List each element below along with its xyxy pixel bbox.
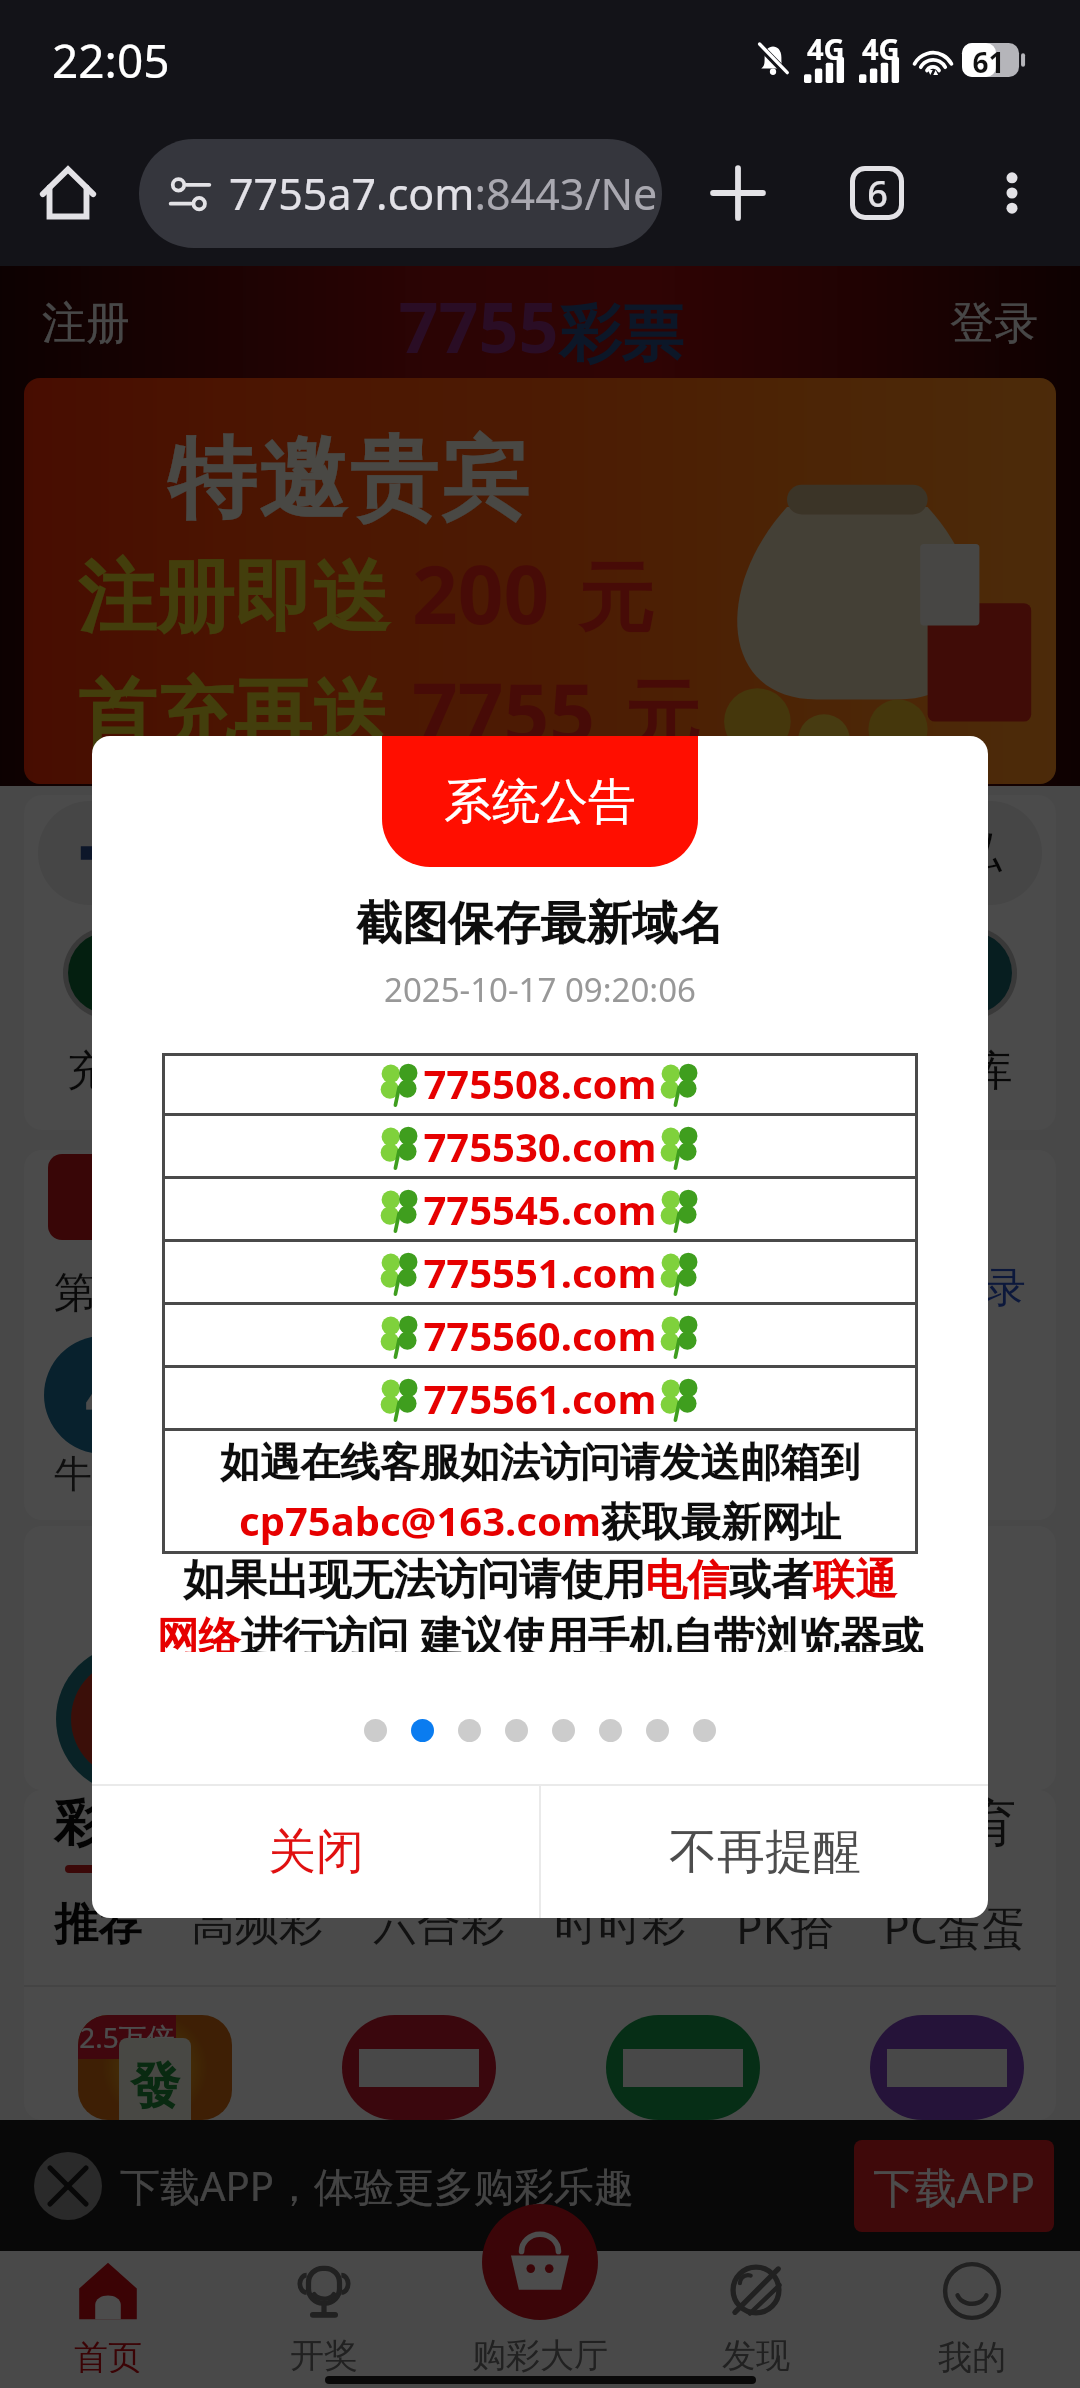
button[interactable]: New tab <box>692 147 784 239</box>
button[interactable]: Home <box>22 147 114 239</box>
staticText: 开奖 <box>290 2334 358 2373</box>
button[interactable]: 我的 <box>864 2251 1080 2373</box>
staticText: 7755 <box>398 278 559 373</box>
staticText: 图库 <box>929 1045 1013 1098</box>
staticText: cp75abc@163.com获取最新网址 <box>162 1493 918 1548</box>
button[interactable]: 775551.com <box>162 1242 918 1302</box>
button[interactable]: 购彩大厅 <box>432 2251 648 2373</box>
staticText: 开奖记录 <box>858 1262 1026 1315</box>
staticText: 彩票 <box>54 1792 154 1855</box>
staticText: 7755a7.com:8443/Ne <box>229 164 658 223</box>
staticText: 不再提醒 <box>669 1822 861 1882</box>
staticText: PC蛋蛋 <box>883 1897 1026 1957</box>
staticText: 购彩大厅 <box>472 2334 608 2373</box>
staticText: 7 <box>223 1353 259 1437</box>
staticText: 4 <box>85 1353 121 1437</box>
staticText: 时时彩 <box>554 1897 686 1952</box>
button[interactable]: 图库 <box>916 927 1026 1098</box>
staticText: 775551.com <box>423 1245 657 1299</box>
staticText: 775545.com <box>423 1182 657 1236</box>
staticText: 4G+ <box>862 29 902 68</box>
button[interactable]: 充值 <box>54 927 164 1098</box>
button[interactable]: 活动 <box>629 927 739 1098</box>
button[interactable] <box>606 2015 760 2120</box>
staticText: 0 <box>775 1353 811 1437</box>
button[interactable]: 2.5万倍 <box>78 2015 232 2120</box>
button[interactable]: Tabs, 6 open <box>831 147 923 239</box>
staticText: 5 <box>485 1677 521 1761</box>
button[interactable]: 775561.com <box>162 1368 918 1428</box>
button[interactable]: 公告 <box>38 801 274 905</box>
staticText: 彩票 <box>559 295 683 373</box>
button[interactable]: Dismiss download banner <box>34 2152 102 2220</box>
button[interactable]: 客服 <box>550 801 786 905</box>
staticText: 活动 <box>642 1045 726 1098</box>
staticText: 元 <box>624 669 700 765</box>
staticText: 下载APP <box>873 2158 1035 2215</box>
staticText: PK拾 <box>736 1897 834 1957</box>
button[interactable]: 775545.com <box>162 1179 918 1239</box>
staticText: 6 <box>867 169 888 218</box>
staticText: 代理 <box>402 826 490 881</box>
staticText: 9 <box>499 1353 535 1437</box>
staticText: 775561.com <box>423 1371 657 1425</box>
button[interactable]: 775530.com <box>162 1116 918 1176</box>
staticText: 1 <box>361 1353 397 1437</box>
button[interactable]: 提现 <box>341 927 451 1098</box>
staticText: 特邀贵宾 <box>166 424 530 535</box>
staticText: 3 <box>637 1353 673 1437</box>
staticText: 注册即送 <box>78 549 390 647</box>
staticText: 200 <box>412 538 550 647</box>
staticText: 充值 <box>67 1045 151 1098</box>
staticText: 高频彩 <box>191 1897 323 1952</box>
staticText: 牛牛 幸运 和值 <box>54 1446 322 1498</box>
staticText: 7755 <box>412 656 596 765</box>
button[interactable]: 775508.com <box>162 1053 918 1113</box>
staticText: 775560.com <box>423 1308 657 1362</box>
button[interactable]: 关闭 <box>92 1786 539 1918</box>
button[interactable]: 发现 <box>648 2251 864 2373</box>
staticText: 网络进行访问 建议使用手机自带浏览器或 <box>92 1607 988 1652</box>
button[interactable]: 购彩大厅 <box>482 2204 598 2320</box>
staticText: 推荐 <box>54 1897 142 1952</box>
button[interactable]: 开奖 <box>216 2251 432 2373</box>
staticText: 六合彩 <box>373 1897 505 1952</box>
staticText: 22:05 <box>52 29 170 92</box>
staticText: 系统公告 <box>444 772 636 832</box>
button[interactable]: 下载APP <box>854 2140 1054 2232</box>
staticText: 2.5万倍 <box>79 2018 175 2056</box>
staticText: 注册 <box>42 296 130 351</box>
button[interactable] <box>870 2015 1024 2120</box>
button[interactable]: 特邀贵宾 <box>24 378 1056 784</box>
button[interactable]: 隐私 <box>806 801 1042 905</box>
staticText: 775530.com <box>423 1119 657 1173</box>
staticText: 登录 <box>950 296 1038 351</box>
staticText: 首页 <box>74 2336 142 2373</box>
button[interactable]: 775560.com <box>162 1305 918 1365</box>
button[interactable]: 首页 <box>0 2251 216 2373</box>
button[interactable]: 代理 <box>294 801 530 905</box>
staticText: 775508.com <box>423 1056 657 1110</box>
button[interactable]: More options <box>966 147 1058 239</box>
staticText: 首充再送 <box>78 667 390 765</box>
staticText: 如遇在线客服如法访问请发送邮箱到 <box>162 1437 918 1487</box>
staticText: 截图保存最新域名 <box>92 895 988 953</box>
button[interactable] <box>342 2015 496 2120</box>
staticText: 如果出现无法访问请使用电信或者联通 <box>92 1554 988 1607</box>
staticText: 發 <box>130 2055 180 2118</box>
staticText: 4G <box>807 29 845 68</box>
button[interactable]: 7755a7.com:8443/Ne <box>139 139 662 248</box>
staticText: 2025-10-17 09:20:06 <box>92 967 988 1012</box>
staticText: 元 <box>578 551 654 647</box>
staticText: 下载APP，体验更多购彩乐趣 <box>120 2158 634 2213</box>
staticText: 提现 <box>354 1045 438 1098</box>
staticText: 体育 <box>916 1792 1016 1855</box>
staticText: 发现 <box>722 2334 790 2373</box>
staticText: 1 <box>671 1677 707 1761</box>
button[interactable]: 不再提醒 <box>541 1786 988 1918</box>
staticText: 隐私 <box>914 826 1002 881</box>
staticText: 关闭 <box>268 1822 364 1882</box>
